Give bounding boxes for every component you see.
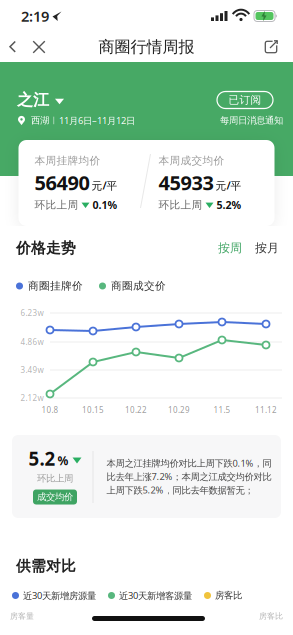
staticText: 2.12w (20, 393, 43, 403)
staticText: % (57, 452, 68, 468)
button[interactable]: 选择商圈 (0, 90, 64, 110)
staticText: 10.15 (82, 405, 104, 415)
staticText: 56490 (34, 169, 89, 196)
staticText: 丨 (50, 116, 58, 125)
staticText: 房客比 (215, 590, 242, 601)
staticText: 每周日消息通知 (220, 115, 283, 126)
staticText: 供需对比 (16, 557, 76, 575)
staticText: 价格走势 (16, 239, 76, 257)
staticText: 10.22 (125, 405, 147, 415)
button[interactable]: Close (22, 32, 48, 62)
staticText: 本周挂牌均价 (34, 154, 100, 167)
staticText: 按月 (255, 241, 279, 255)
staticText: 11月6日–11月12日 (59, 114, 135, 127)
staticText: 元/平 (215, 178, 241, 193)
staticText: 本周成交均价 (158, 154, 224, 167)
staticText: 西湖 (31, 115, 49, 126)
staticText: 近30天新增客源量 (119, 589, 192, 602)
staticText: 商圈成交价 (111, 279, 166, 292)
staticText: 商圈行情周报 (98, 37, 194, 57)
staticText: 45933 (158, 169, 213, 196)
staticText: 之江 (17, 90, 49, 110)
button[interactable]: 按月 (242, 241, 279, 255)
staticText: 10.8 (41, 405, 58, 415)
staticText: 6.23w (20, 308, 43, 318)
staticText: 2:19 (21, 6, 49, 26)
button[interactable]: Back (0, 32, 22, 62)
staticText: 元/平 (91, 178, 117, 193)
button[interactable]: 已订阅 (217, 91, 293, 108)
staticText: 11.12 (255, 405, 277, 415)
staticText: 0.1% (92, 198, 117, 212)
staticText: 5.2% (216, 198, 241, 212)
staticText: 本周之江挂牌均价对比上周下跌0.1%，同比去年上涨7.2%；本周之江成交均价对比… (106, 457, 271, 496)
button[interactable]: 按周 (218, 241, 242, 255)
staticText: 近30天新增房源量 (23, 589, 96, 602)
button[interactable]: Share (264, 32, 293, 62)
staticText: 商圈挂牌价 (28, 279, 83, 292)
staticText: 环比上周 (34, 198, 78, 211)
staticText: 环比上周 (37, 473, 73, 484)
staticText: 环比上周 (158, 198, 202, 211)
staticText: 5.2 (28, 446, 55, 471)
staticText: 房客量 (10, 611, 34, 621)
staticText: 4.86w (20, 337, 43, 347)
staticText: 成交均价 (37, 491, 73, 503)
staticText: 11.5 (213, 405, 230, 415)
staticText: 已订阅 (228, 93, 261, 106)
staticText: 按周 (218, 241, 242, 255)
staticText: 10.29 (168, 405, 190, 415)
staticText: 房客比 (259, 611, 283, 621)
staticText: 3.49w (20, 365, 43, 375)
